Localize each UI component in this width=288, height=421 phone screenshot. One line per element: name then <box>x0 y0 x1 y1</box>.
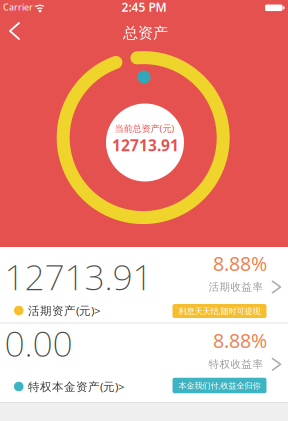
staticText: 特权本金资产(元)> <box>28 379 125 394</box>
button[interactable]: 本金我们付,收益全归你 <box>172 378 266 393</box>
staticText: 2:45 PM <box>121 0 166 15</box>
button[interactable]: 活期资产(元)> <box>14 303 101 318</box>
staticText: Carrier <box>3 1 33 13</box>
button[interactable]: 利息天天结,随时可提现 <box>172 304 266 318</box>
button[interactable]: Back <box>4 17 25 45</box>
staticText: 利息天天结,随时可提现 <box>178 306 260 316</box>
button[interactable]: 特权本金资产(元)> <box>14 379 125 394</box>
staticText: 12713.91 <box>112 135 179 155</box>
staticText: 0.00 <box>4 319 72 366</box>
staticText: 活期收益率 <box>208 281 263 293</box>
staticText: 8.88% <box>213 251 267 276</box>
staticText: 活期资产(元)> <box>28 303 101 318</box>
staticText: 当前总资产(元) <box>114 122 174 134</box>
staticText: 总资产 <box>123 24 168 42</box>
staticText: 特权收益率 <box>208 358 263 371</box>
staticText: 本金我们付,收益全归你 <box>178 380 260 391</box>
staticText: 12713.91 <box>4 253 152 300</box>
button[interactable]: 特权收益率 <box>208 358 280 371</box>
button[interactable]: 活期收益率 <box>208 281 280 293</box>
staticText: 8.88% <box>213 328 267 353</box>
